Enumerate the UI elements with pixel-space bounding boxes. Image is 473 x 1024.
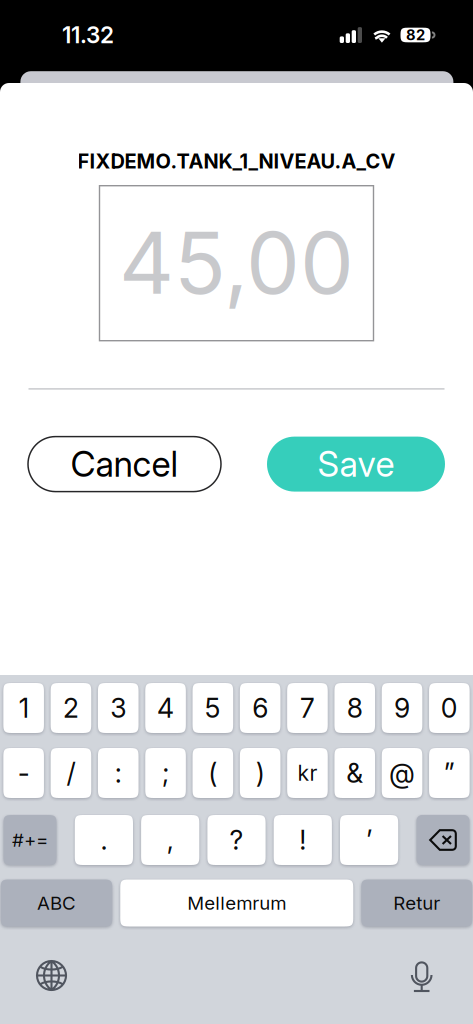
button[interactable]: !: [274, 815, 332, 865]
staticText: 7: [300, 692, 315, 724]
staticText: ”: [444, 757, 455, 789]
button[interactable]: 0: [429, 683, 470, 733]
button[interactable]: 6: [240, 683, 280, 733]
button[interactable]: Dictation: [394, 950, 450, 1000]
button[interactable]: 2: [51, 683, 91, 733]
staticText: ?: [229, 824, 243, 856]
staticText: Save: [317, 443, 394, 485]
button[interactable]: @: [382, 748, 422, 798]
staticText: /: [66, 757, 75, 789]
staticText: 6: [252, 692, 268, 724]
staticText: .: [100, 824, 107, 856]
button[interactable]: Save: [267, 437, 445, 492]
button[interactable]: 1: [3, 683, 44, 733]
button[interactable]: ”: [429, 748, 470, 798]
button[interactable]: Next keyboard: [23, 950, 79, 1000]
staticText: Mellemrum: [187, 892, 286, 914]
staticText: ’: [366, 824, 372, 856]
staticText: @: [389, 757, 415, 789]
button[interactable]: ’: [340, 815, 398, 865]
button[interactable]: kr: [287, 748, 328, 798]
button[interactable]: #+=: [3, 815, 56, 865]
staticText: 9: [394, 692, 410, 724]
staticText: &: [346, 757, 363, 789]
staticText: 4: [157, 692, 174, 724]
button[interactable]: 4: [145, 683, 186, 733]
staticText: FIXDEMO.TANK_1_NIVEAU.A_CV: [77, 149, 395, 173]
staticText: !: [299, 824, 306, 856]
staticText: ,: [167, 824, 174, 856]
staticText: kr: [297, 760, 317, 786]
staticText: ABC: [37, 892, 76, 914]
button[interactable]: 3: [98, 683, 138, 733]
staticText: 45,00: [119, 211, 354, 314]
staticText: 0: [441, 692, 458, 724]
staticText: ): [256, 757, 265, 789]
staticText: 5: [205, 692, 221, 724]
staticText: 8: [347, 692, 363, 724]
button[interactable]: -: [3, 748, 44, 798]
button[interactable]: &: [334, 748, 375, 798]
button[interactable]: 8: [334, 683, 375, 733]
staticText: 2: [63, 692, 79, 724]
button[interactable]: Cancel: [28, 437, 221, 492]
staticText: 11.32: [62, 21, 114, 49]
button[interactable]: Mellemrum: [120, 879, 353, 926]
staticText: ;: [162, 757, 169, 789]
button[interactable]: ?: [207, 815, 266, 865]
button[interactable]: (: [192, 748, 233, 798]
staticText: Cancel: [70, 443, 178, 485]
button[interactable]: 5: [192, 683, 233, 733]
button[interactable]: Delete: [416, 815, 469, 865]
button[interactable]: ;: [145, 748, 186, 798]
button[interactable]: Retur: [361, 879, 472, 926]
staticText: 1: [19, 692, 29, 724]
button[interactable]: .: [75, 815, 133, 865]
button[interactable]: /: [51, 748, 91, 798]
button[interactable]: 9: [382, 683, 422, 733]
staticText: 3: [110, 692, 126, 724]
staticText: (: [208, 757, 217, 789]
button[interactable]: 7: [287, 683, 328, 733]
button[interactable]: ABC: [1, 879, 112, 926]
button[interactable]: ,: [141, 815, 199, 865]
staticText: -: [18, 757, 30, 789]
staticText: Retur: [393, 892, 440, 914]
button[interactable]: :: [98, 748, 138, 798]
staticText: 82: [406, 26, 425, 44]
staticText: :: [115, 757, 122, 789]
staticText: #+=: [12, 829, 48, 851]
button[interactable]: ): [240, 748, 280, 798]
